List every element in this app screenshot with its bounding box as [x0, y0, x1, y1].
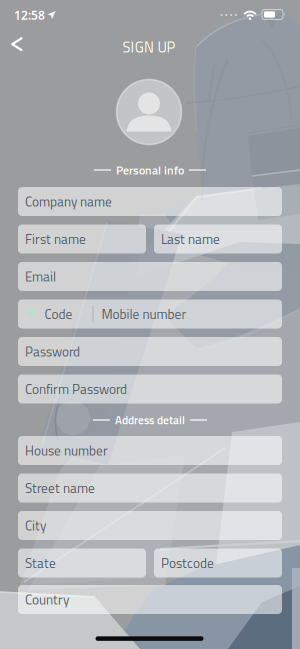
button[interactable]: Email: [18, 262, 282, 291]
staticText: 12:58: [14, 7, 45, 23]
staticText: Last name: [161, 229, 220, 249]
staticText: Confirm Password: [25, 379, 127, 399]
button[interactable]: Code: [18, 299, 282, 328]
button[interactable]: Company name: [18, 187, 282, 216]
staticText: Postcode: [161, 553, 214, 573]
button[interactable]: Country: [18, 585, 282, 614]
staticText: Code: [44, 304, 72, 324]
staticText: Street name: [25, 478, 95, 498]
button[interactable]: Last name: [154, 224, 282, 253]
staticText: Personal info: [116, 161, 184, 179]
button[interactable]: First name: [18, 224, 146, 253]
staticText: Password: [25, 341, 80, 362]
button[interactable]: State: [18, 548, 146, 577]
staticText: Address detail: [115, 411, 185, 429]
staticText: Mobile number: [101, 304, 186, 324]
staticText: Email: [25, 266, 56, 287]
staticText: Country: [25, 589, 69, 610]
button[interactable]: Password: [18, 337, 282, 366]
button[interactable]: City: [18, 511, 282, 540]
button[interactable]: Confirm Password: [18, 374, 282, 403]
button[interactable]: [116, 79, 181, 144]
staticText: SIGN UP: [122, 36, 176, 58]
button[interactable]: [0, 31, 41, 57]
button[interactable]: House number: [18, 436, 282, 465]
staticText: House number: [25, 440, 108, 461]
button[interactable]: Street name: [18, 473, 282, 502]
staticText: First name: [25, 229, 86, 249]
staticText: City: [25, 515, 46, 536]
button[interactable]: Postcode: [154, 548, 282, 577]
staticText: State: [25, 553, 56, 573]
staticText: Company name: [25, 191, 112, 212]
